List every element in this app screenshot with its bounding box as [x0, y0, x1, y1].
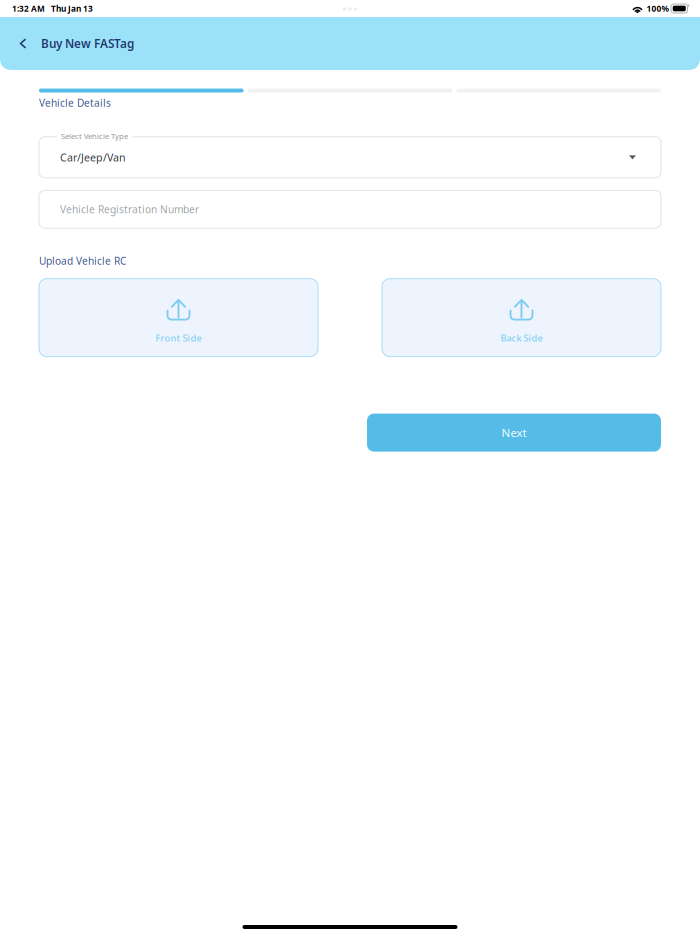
staticText: Select Vehicle Type [61, 131, 128, 141]
button[interactable]: Car/Jeep/Van [39, 137, 661, 178]
staticText: Vehicle Details [39, 96, 111, 110]
staticText: Front Side [155, 332, 201, 344]
staticText: 1:32 AM [12, 3, 45, 14]
button[interactable]: Next [367, 414, 661, 452]
button[interactable]: Front Side [39, 279, 318, 357]
staticText: Vehicle Registration Number [60, 202, 199, 216]
staticText: Car/Jeep/Van [60, 150, 126, 164]
staticText: 100% [646, 3, 668, 14]
button[interactable]: Back Side [382, 279, 661, 357]
staticText: Thu Jan 13 [51, 3, 93, 14]
button[interactable]: Back [10, 17, 36, 70]
button[interactable]: Vehicle Registration Number [39, 190, 661, 228]
staticText: Back Side [500, 332, 542, 344]
staticText: Buy New FASTag [41, 35, 134, 51]
staticText: Upload Vehicle RC [39, 254, 126, 268]
staticText: Next [501, 425, 526, 440]
